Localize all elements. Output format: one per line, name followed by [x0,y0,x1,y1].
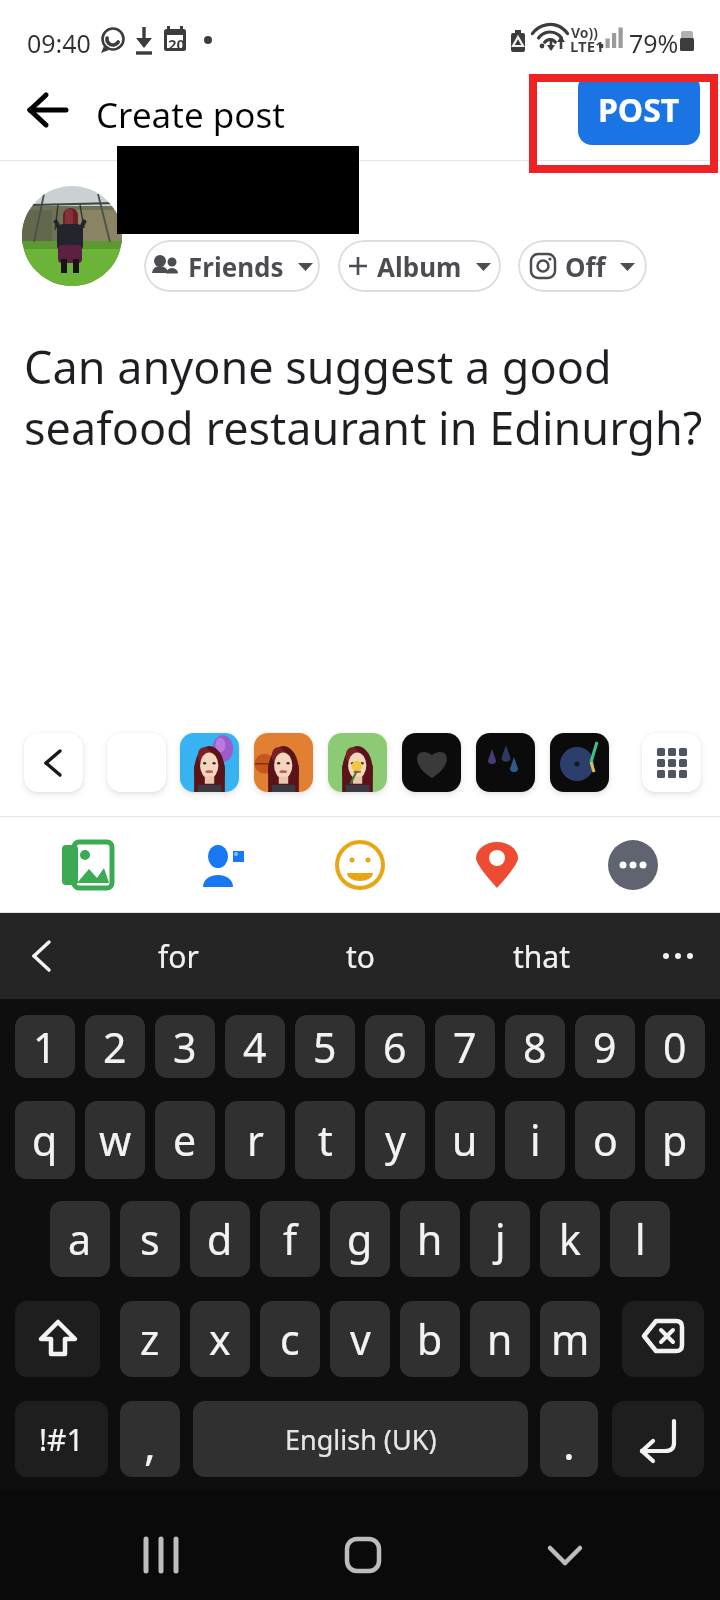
button[interactable]: Off [518,240,647,292]
button[interactable]: Home [323,1515,403,1595]
button[interactable]: s [120,1201,180,1277]
button[interactable]: c [260,1301,320,1377]
button[interactable]: Photo [37,817,137,913]
button[interactable]: Backspace [622,1301,704,1377]
button[interactable]: Enter [612,1401,704,1477]
button[interactable]: POST [578,74,700,145]
staticText: e [173,1112,197,1168]
staticText: Friends [188,249,284,284]
button[interactable]: m [540,1301,600,1377]
button[interactable]: Previous [12,926,72,986]
button[interactable]: r [225,1101,285,1179]
button[interactable]: h [400,1201,460,1277]
staticText: q [32,1112,58,1168]
staticText: Album [377,249,462,284]
staticText: 8 [523,1019,547,1075]
button[interactable]: 6 [365,1015,425,1078]
button[interactable]: Comma [120,1401,180,1477]
button[interactable]: e [155,1101,215,1179]
button[interactable]: t [295,1101,355,1179]
button[interactable]: n [470,1301,530,1377]
button[interactable]: f [260,1201,320,1277]
staticText: 1 [33,1019,57,1075]
staticText: n [487,1311,513,1367]
button[interactable]: Sticker [24,733,83,792]
button[interactable]: x [190,1301,250,1377]
staticText: Vo)) [571,23,599,42]
button[interactable]: Sticker [180,733,239,792]
staticText: l [635,1211,646,1267]
staticText: seafood restaurant in Edinurgh? [24,397,703,458]
button[interactable]: for [98,913,258,999]
button[interactable]: to [280,913,440,999]
staticText: s [140,1211,160,1267]
staticText: o [593,1112,618,1168]
staticText: 7 [453,1019,477,1075]
button[interactable]: 7 [435,1015,495,1078]
button[interactable]: p [645,1101,705,1179]
button[interactable]: Period [540,1401,598,1477]
button[interactable]: Recent apps [121,1515,201,1595]
staticText: i [530,1112,541,1168]
button[interactable]: k [540,1201,600,1277]
button[interactable]: Back [14,76,82,144]
button[interactable]: j [470,1201,530,1277]
button[interactable]: Tag people [173,817,273,913]
button[interactable]: u [435,1101,495,1179]
staticText: b [417,1311,443,1367]
button[interactable]: Sticker [476,733,535,792]
staticText: f [283,1211,298,1267]
button[interactable]: 3 [155,1015,215,1078]
button[interactable]: 5 [295,1015,355,1078]
button[interactable]: l [610,1201,670,1277]
button[interactable]: Sticker [402,733,461,792]
button[interactable]: 9 [575,1015,635,1078]
staticText: 2 [103,1019,127,1075]
button[interactable]: Symbols [15,1401,108,1477]
staticText: Can anyone suggest a good [24,336,612,397]
button[interactable]: Sticker [254,733,313,792]
button[interactable]: b [400,1301,460,1377]
staticText: 79% [629,26,679,60]
staticText: 4 [243,1019,267,1075]
staticText: Off [565,249,606,284]
button[interactable]: Check in [447,817,547,913]
button[interactable]: Sticker [642,733,701,792]
button[interactable]: 4 [225,1015,285,1078]
button[interactable]: o [575,1101,635,1179]
staticText: w [99,1112,132,1168]
button[interactable]: Friends [144,240,320,292]
button[interactable]: 8 [505,1015,565,1078]
button[interactable]: 0 [645,1015,705,1078]
staticText: 3 [173,1019,197,1075]
button[interactable]: Profile picture [22,186,122,286]
staticText: y [385,1112,406,1168]
button[interactable]: z [120,1301,180,1377]
button[interactable]: More [583,817,683,913]
button[interactable]: Space [193,1401,528,1477]
staticText: 0 [663,1019,687,1075]
staticText: 09:40 [27,26,91,60]
button[interactable]: d [190,1201,250,1277]
button[interactable]: y [365,1101,425,1179]
button[interactable]: i [505,1101,565,1179]
staticText: English (UK) [285,1421,437,1458]
button[interactable]: Sticker [328,733,387,792]
button[interactable]: Feeling [310,817,410,913]
button[interactable]: q [15,1101,75,1179]
button[interactable]: a [50,1201,110,1277]
button[interactable]: More options [648,926,708,986]
button[interactable]: 2 [85,1015,145,1078]
staticText: 20 [168,34,186,54]
button[interactable]: Sticker [550,733,609,792]
button[interactable]: that [462,913,622,999]
button[interactable]: Album [338,240,501,292]
button[interactable]: 1 [15,1015,75,1078]
staticText: z [140,1311,160,1367]
button[interactable]: Shift [15,1301,100,1377]
button[interactable]: w [85,1101,145,1179]
button[interactable]: Hide keyboard [525,1515,605,1595]
button[interactable]: v [330,1301,390,1377]
button[interactable]: g [330,1201,390,1277]
